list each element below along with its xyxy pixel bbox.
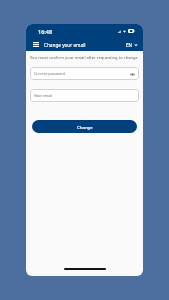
button[interactable]: Current password bbox=[30, 67, 139, 80]
staticText: 16:48 bbox=[38, 28, 53, 35]
staticText: Change bbox=[77, 124, 93, 130]
staticText: EN bbox=[126, 42, 133, 48]
button[interactable]: EN bbox=[125, 40, 139, 50]
button[interactable]: Show password bbox=[128, 70, 136, 78]
staticText: You must confirm your email after reques… bbox=[30, 55, 139, 61]
button[interactable]: Open navigation menu bbox=[31, 40, 40, 49]
button[interactable]: New email bbox=[30, 89, 139, 102]
staticText: Change your email bbox=[44, 42, 86, 48]
button[interactable]: Change bbox=[32, 120, 137, 133]
staticText: New email bbox=[34, 93, 53, 98]
staticText: Current password bbox=[34, 71, 65, 76]
